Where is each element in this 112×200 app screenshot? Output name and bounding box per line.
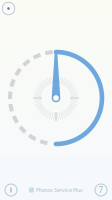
staticText: 7 <box>98 185 103 195</box>
staticText: Photos Service Plus <box>36 186 83 194</box>
button[interactable]: Status <box>0 0 17 17</box>
button[interactable]: Info <box>1 182 21 198</box>
button[interactable]: Count <box>91 182 111 198</box>
